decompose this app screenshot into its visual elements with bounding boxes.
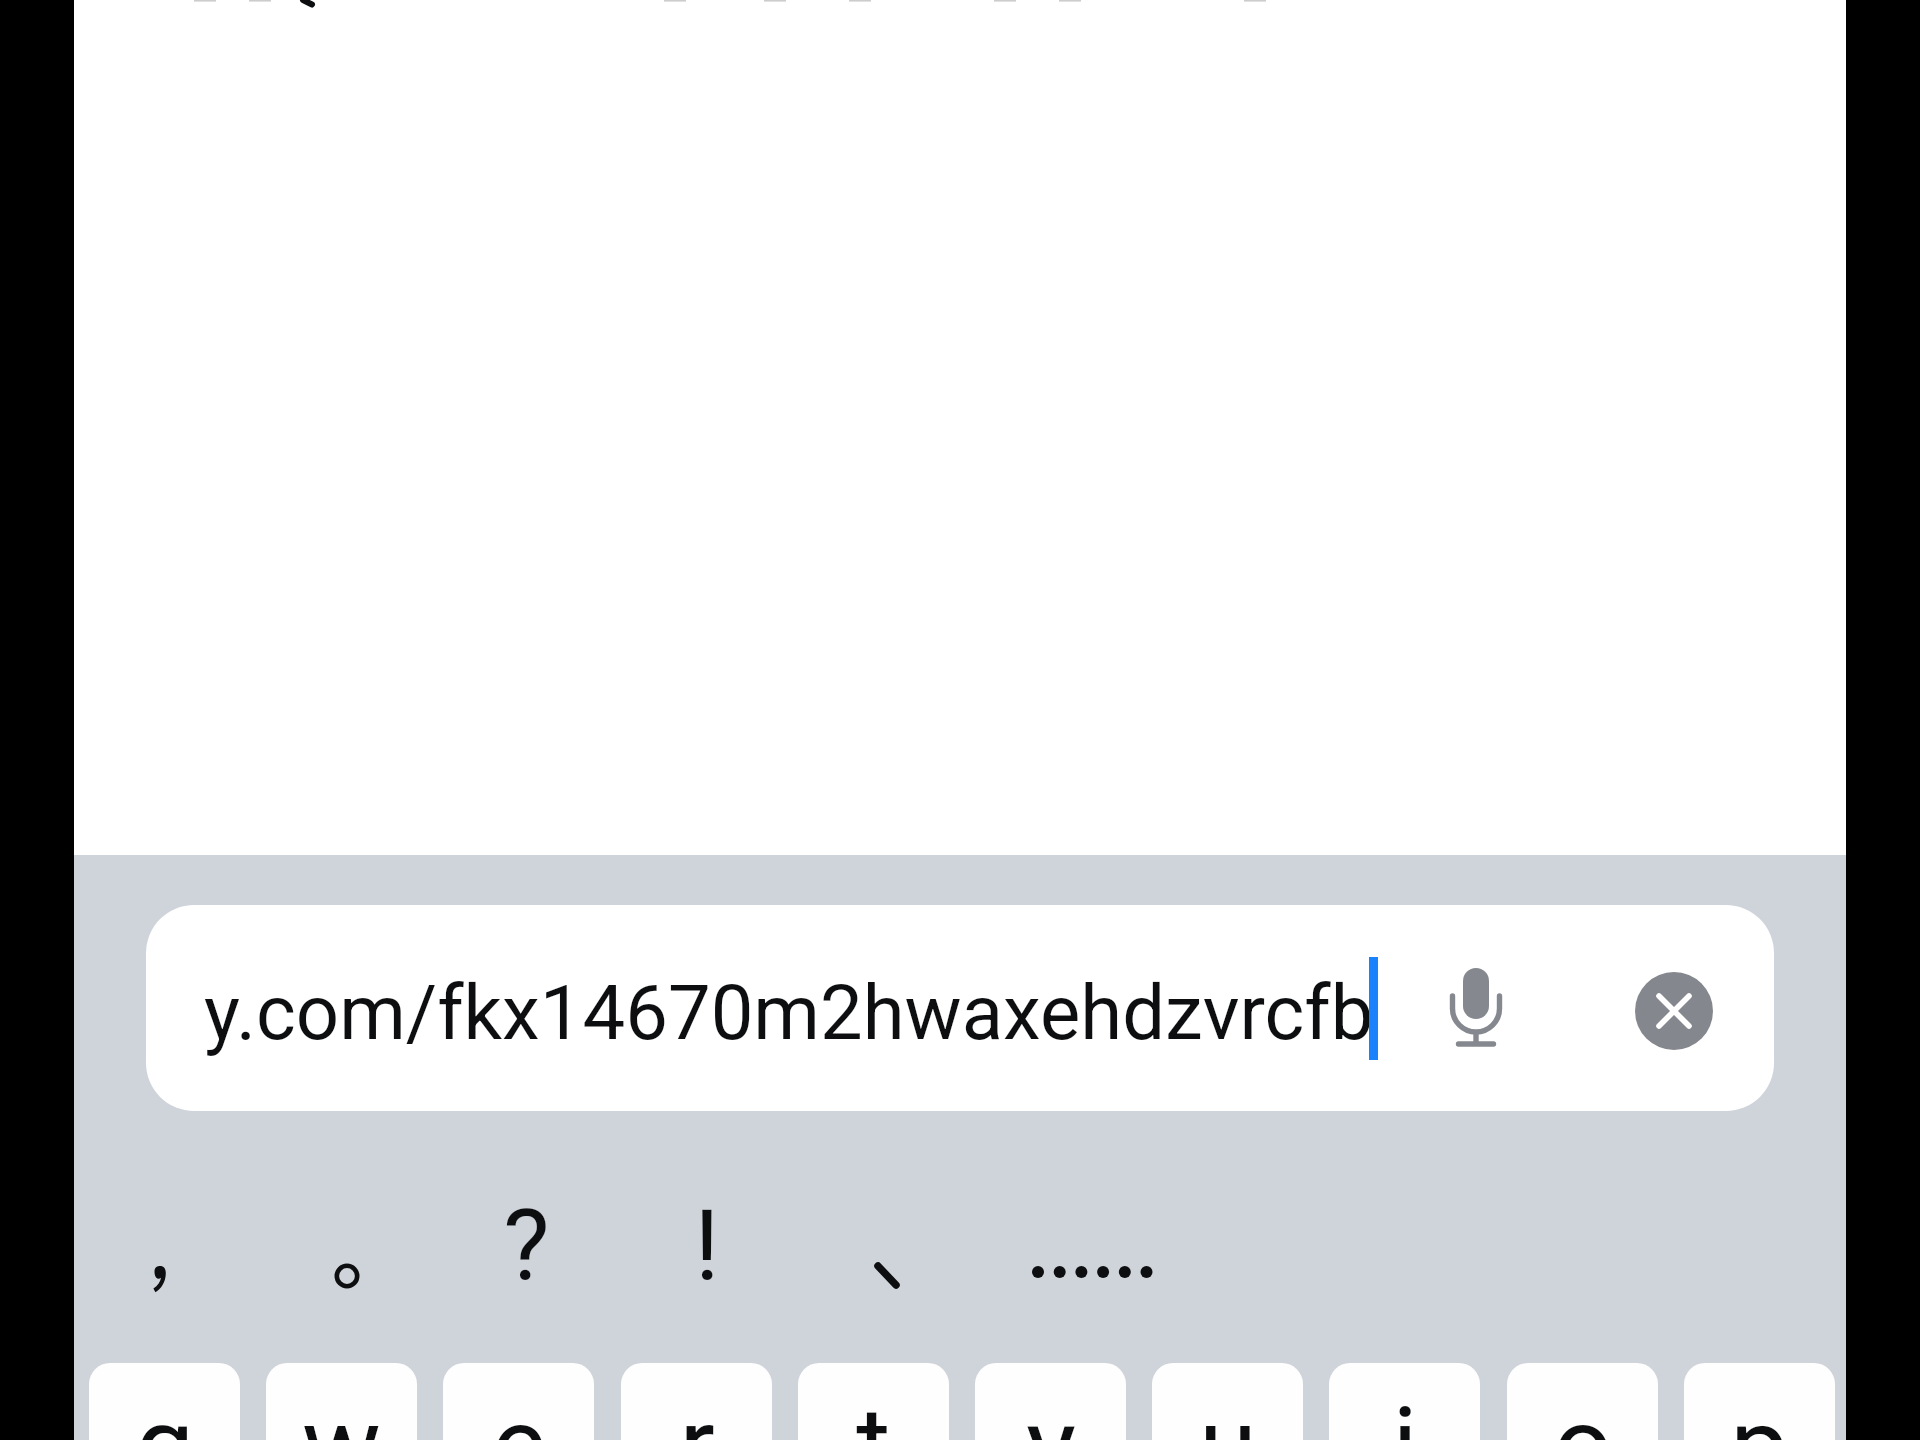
button[interactable]: o	[1507, 1363, 1658, 1440]
button[interactable]: w	[266, 1363, 417, 1440]
button[interactable]: e	[443, 1363, 594, 1440]
button[interactable]: !	[619, 1170, 795, 1310]
staticText: t	[856, 1385, 891, 1440]
staticText: p	[1730, 1385, 1789, 1440]
button[interactable]: Punctuation	[799, 1170, 975, 1310]
staticText: r	[679, 1385, 715, 1440]
staticText: !	[694, 1188, 720, 1303]
staticText: i	[1392, 1385, 1418, 1440]
button[interactable]: Punctuation	[72, 1170, 248, 1310]
button[interactable]: u	[1152, 1363, 1303, 1440]
button[interactable]: Punctuation	[259, 1170, 435, 1310]
staticText: o	[1553, 1385, 1613, 1440]
staticText: u	[1199, 1385, 1257, 1440]
button[interactable]: y.com/fkx14670m2hwaxehdzvrcfb	[146, 905, 1774, 1111]
staticText: q	[135, 1385, 195, 1440]
staticText: e	[491, 1385, 547, 1440]
staticText: ?	[503, 1188, 550, 1303]
button[interactable]: t	[798, 1363, 949, 1440]
staticText: y	[1026, 1385, 1076, 1440]
button[interactable]: Punctuation	[1004, 1170, 1180, 1310]
button[interactable]: p	[1684, 1363, 1835, 1440]
staticText: y.com/fkx14670m2hwaxehdzvrcfb	[204, 968, 1374, 1057]
staticText: w	[302, 1385, 381, 1440]
button[interactable]: Clear text	[1614, 951, 1734, 1071]
button[interactable]: Voice search	[1406, 930, 1546, 1070]
button[interactable]: q	[89, 1363, 240, 1440]
button[interactable]: r	[621, 1363, 772, 1440]
button[interactable]: y	[975, 1363, 1126, 1440]
button[interactable]: i	[1329, 1363, 1480, 1440]
button[interactable]: ?	[438, 1170, 614, 1310]
